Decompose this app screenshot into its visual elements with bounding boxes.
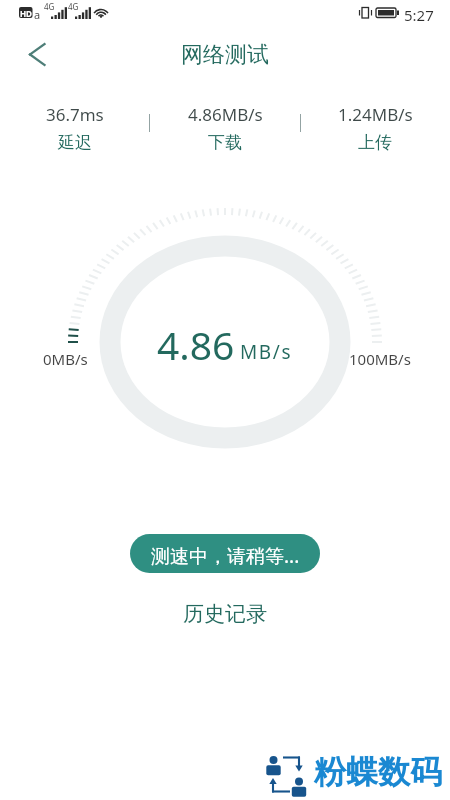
staticText: 4.86MB/s bbox=[188, 103, 263, 126]
button[interactable]: 测速中，请稍等... bbox=[130, 534, 320, 573]
button[interactable]: Back bbox=[14, 32, 60, 78]
staticText: MB/s bbox=[240, 339, 293, 365]
staticText: 4G bbox=[44, 1, 55, 12]
staticText: 测速中，请稍等... bbox=[151, 543, 300, 569]
staticText: 4.86 bbox=[157, 318, 235, 371]
staticText: HD bbox=[20, 8, 32, 19]
staticText: 4G bbox=[68, 1, 79, 12]
staticText: 1.24MB/s bbox=[338, 103, 413, 126]
staticText: 0MB/s bbox=[43, 349, 88, 369]
staticText: 100MB/s bbox=[349, 349, 411, 369]
staticText: 5:27 bbox=[404, 5, 434, 25]
staticText: 粉蝶数码 bbox=[314, 752, 442, 792]
staticText: 网络测试 bbox=[181, 41, 269, 69]
staticText: 36.7ms bbox=[46, 103, 104, 126]
staticText: a bbox=[34, 7, 41, 22]
staticText: 历史记录 bbox=[183, 601, 267, 627]
staticText: 下载 bbox=[208, 132, 242, 153]
button[interactable]: 历史记录 bbox=[183, 601, 267, 627]
staticText: 延迟 bbox=[58, 132, 92, 153]
staticText: 上传 bbox=[358, 132, 392, 153]
